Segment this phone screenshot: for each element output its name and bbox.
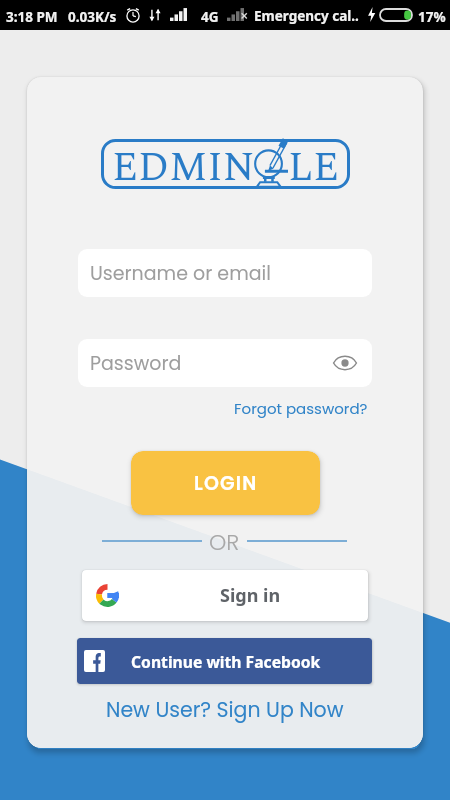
staticText: Emergency cal..	[254, 7, 359, 25]
button[interactable]: Continue with Facebook	[77, 638, 372, 684]
staticText: LOGIN	[194, 470, 258, 497]
staticText: Continue with Facebook	[131, 651, 321, 672]
staticText: 17%	[418, 8, 446, 26]
staticText: 0.03K/s	[68, 8, 117, 26]
button[interactable]: Password	[78, 339, 372, 387]
staticText: 3:18 PM	[6, 8, 58, 26]
staticText: LE	[288, 138, 339, 188]
button[interactable]: Username or email	[78, 249, 372, 297]
staticText: 4G	[201, 8, 219, 26]
staticText: OR	[209, 527, 240, 555]
staticText: Forgot password?	[234, 398, 368, 419]
button[interactable]: Show password	[332, 350, 358, 376]
staticText: EDMIN	[112, 138, 255, 188]
button[interactable]: Sign in	[82, 570, 368, 621]
staticText: New User? Sign Up Now	[106, 695, 344, 724]
button[interactable]: LOGIN	[131, 451, 320, 515]
staticText: Password	[90, 350, 182, 377]
staticText: Sign in	[220, 583, 281, 608]
button[interactable]: New User? Sign Up Now	[102, 693, 348, 726]
button[interactable]: Forgot password?	[231, 395, 371, 422]
staticText: Username or email	[90, 260, 271, 287]
